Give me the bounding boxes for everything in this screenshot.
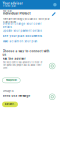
button[interactable]: See your plan documents <box>2 34 48 38</box>
button[interactable]: Edit plan <box>0 0 5 6</box>
staticText: Make a claim on your plan <box>2 40 37 43</box>
staticText: Here are the things you can do with your… <box>2 17 49 23</box>
staticText: The help centre has answers to most of t… <box>2 61 42 69</box>
button[interactable]: View or change your cover details <box>2 23 48 28</box>
button[interactable]: Make a claim on your plan <box>2 39 48 43</box>
staticText: Update your payment details <box>2 29 41 32</box>
staticText: View or change your cover details <box>2 22 41 29</box>
button[interactable]: Account <box>0 0 3 3</box>
button[interactable]: Update your payment details <box>2 29 48 33</box>
staticText: Individual Protect <box>2 11 30 15</box>
staticText: See your plan documents <box>2 34 41 38</box>
button[interactable]: Message us <box>0 0 7 7</box>
staticText: Find a question <box>6 79 17 81</box>
staticText: Choose a way to connect with us <box>2 49 49 56</box>
staticText: Your adviser <box>2 2 22 5</box>
staticText: Your plan <box>2 10 11 13</box>
staticText: Protect plan <box>2 5 15 7</box>
button[interactable]: Ask the adviser <box>0 0 7 7</box>
staticText: Send us a message <box>2 94 30 97</box>
button[interactable]: Start a message <box>0 0 16 5</box>
staticText: Start a message <box>4 103 15 105</box>
staticText: Ask the adviser <box>2 57 25 60</box>
button[interactable]: Find a question <box>0 0 18 5</box>
staticText: Message us <box>2 90 13 92</box>
